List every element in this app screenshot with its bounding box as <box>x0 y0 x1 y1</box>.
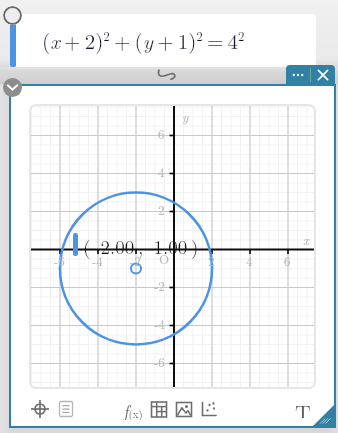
button[interactable]: Add function <box>122 398 144 420</box>
button[interactable]: Image <box>174 399 194 419</box>
button[interactable]: Expression list <box>56 399 76 419</box>
button[interactable]: Undo <box>157 68 179 82</box>
button[interactable]: Table <box>149 399 169 419</box>
button[interactable]: Move tool <box>30 399 50 419</box>
staticText: -6 <box>54 251 65 269</box>
button[interactable]: Close <box>311 65 335 85</box>
staticText: -2 <box>154 276 165 294</box>
button[interactable]: Resize <box>311 404 335 428</box>
staticText: ( -2.00 , -1.00 ) <box>83 233 199 260</box>
staticText: O <box>159 249 170 267</box>
staticText: 4 <box>246 251 253 269</box>
button[interactable]: More options <box>286 65 310 85</box>
staticText: 6 <box>158 124 165 142</box>
staticText: -2 <box>130 251 141 269</box>
staticText: f(x) <box>123 398 143 420</box>
staticText: 2 <box>158 200 165 218</box>
staticText: -4 <box>92 251 103 269</box>
staticText: y <box>182 107 189 125</box>
staticText: -6 <box>154 352 165 370</box>
staticText: T <box>295 396 311 418</box>
staticText: 6 <box>284 251 291 269</box>
staticText: x <box>303 230 310 248</box>
button[interactable]: Collapse panel <box>3 78 22 97</box>
button[interactable]: Statistics <box>199 399 219 419</box>
staticText: -4 <box>154 314 165 332</box>
staticText: 2 <box>208 251 215 269</box>
button[interactable]: Expression handle <box>3 6 22 25</box>
staticText: (x + 2)2 + (y + 1)2 = 42 <box>42 25 245 55</box>
button[interactable] <box>16 14 316 68</box>
button[interactable]: Text tool <box>292 396 314 418</box>
staticText: 4 <box>158 162 165 180</box>
